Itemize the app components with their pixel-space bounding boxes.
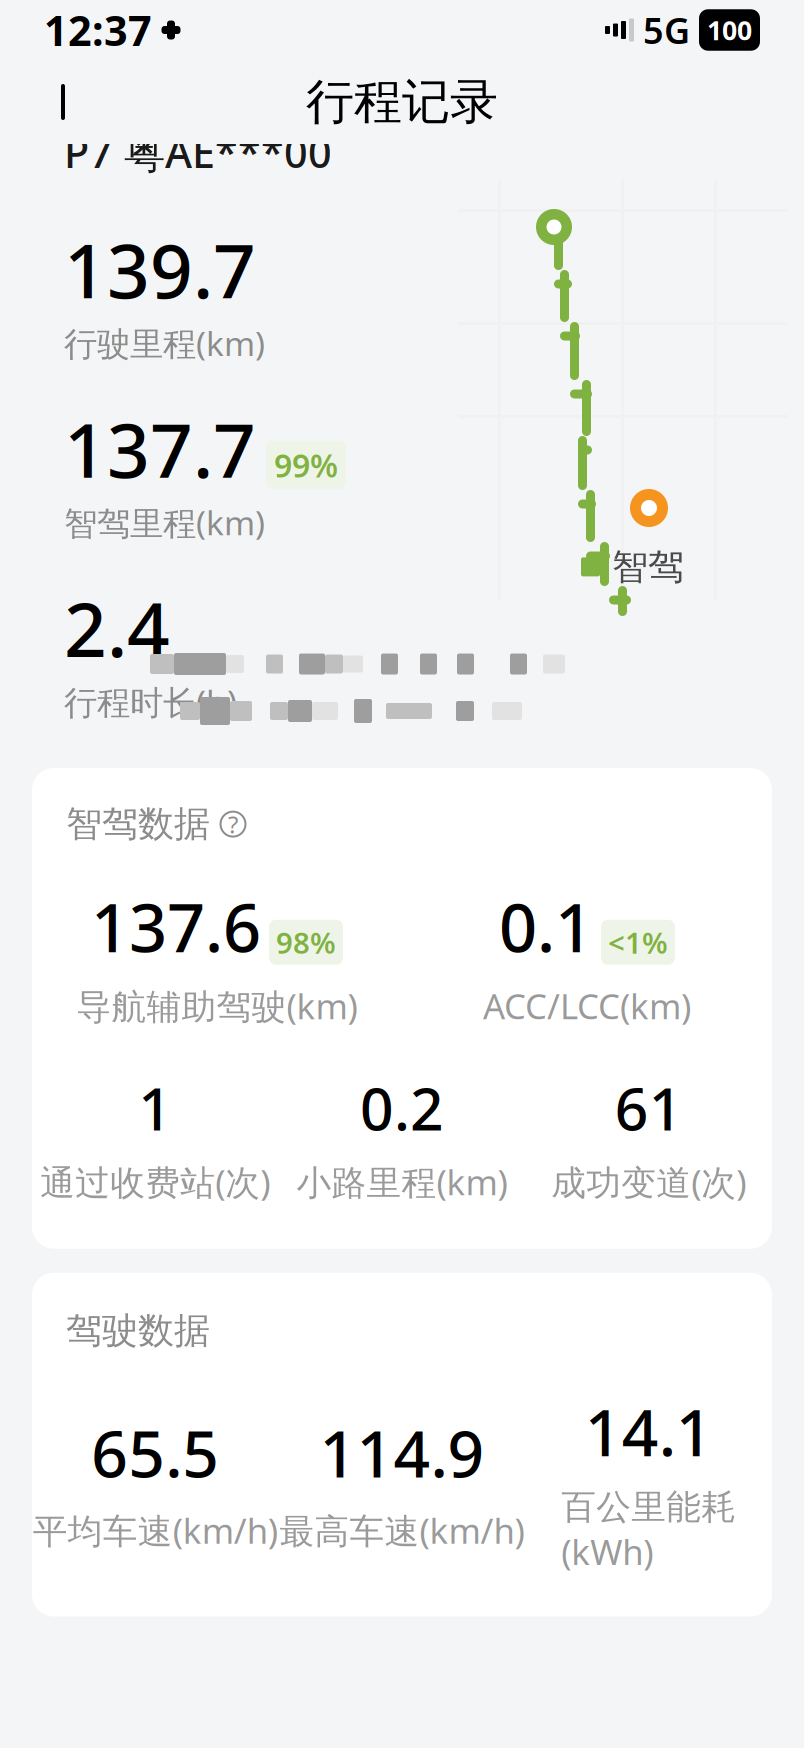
staticText: 2.4 xyxy=(64,579,170,678)
staticText: 139.7 xyxy=(64,220,256,319)
staticText: 平均车速(km/h) xyxy=(33,1507,278,1553)
staticText: P7 粤AE***00 xyxy=(64,125,332,180)
staticText: 114.9 xyxy=(319,1410,484,1495)
staticText: 导航辅助驾驶(km) xyxy=(76,983,357,1029)
staticText: 智驾里程(km) xyxy=(64,500,265,545)
staticText: 百公里能耗(kWh) xyxy=(561,1486,736,1574)
staticText: ACC/LCC(km) xyxy=(483,983,691,1029)
staticText: 通过收费站(次) xyxy=(40,1159,270,1205)
button[interactable]: 分享 xyxy=(622,36,768,107)
staticText: 分享 xyxy=(676,50,746,93)
staticText: 12:37 xyxy=(44,3,152,57)
staticText: 0.2 xyxy=(360,1069,444,1147)
button[interactable]: 返回 xyxy=(36,75,90,129)
staticText: <1% xyxy=(608,923,668,962)
staticText: 137.6 xyxy=(91,882,261,971)
staticText: 2025/10/03 周五 10:11 xyxy=(64,48,427,94)
staticText: 0.1 xyxy=(499,882,593,971)
staticText: 行程记录 xyxy=(306,72,498,131)
staticText: 61 xyxy=(615,1069,683,1147)
staticText: 行驶里程(km) xyxy=(64,321,265,365)
staticText: 智驾数据 xyxy=(66,802,210,846)
staticText: 100 xyxy=(707,12,752,48)
staticText: 14.1 xyxy=(585,1389,713,1474)
staticText: 1 xyxy=(138,1069,172,1147)
staticText: 智驾 xyxy=(612,545,684,589)
button[interactable]: 智驾数据说明 xyxy=(218,809,248,839)
staticText: 65.5 xyxy=(91,1410,219,1495)
staticText: 小路里程(km) xyxy=(296,1159,507,1205)
staticText: 99% xyxy=(274,444,338,486)
staticText: 行程时长(h) xyxy=(64,680,237,724)
staticText: 最高车速(km/h) xyxy=(279,1507,524,1553)
staticText: 98% xyxy=(276,923,336,962)
staticText: ? xyxy=(228,808,238,840)
staticText: 驾驶数据 xyxy=(66,1309,210,1353)
staticText: 5G xyxy=(643,6,690,54)
staticText: 137.7 xyxy=(64,399,256,498)
staticText: 成功变道(次) xyxy=(551,1159,746,1205)
